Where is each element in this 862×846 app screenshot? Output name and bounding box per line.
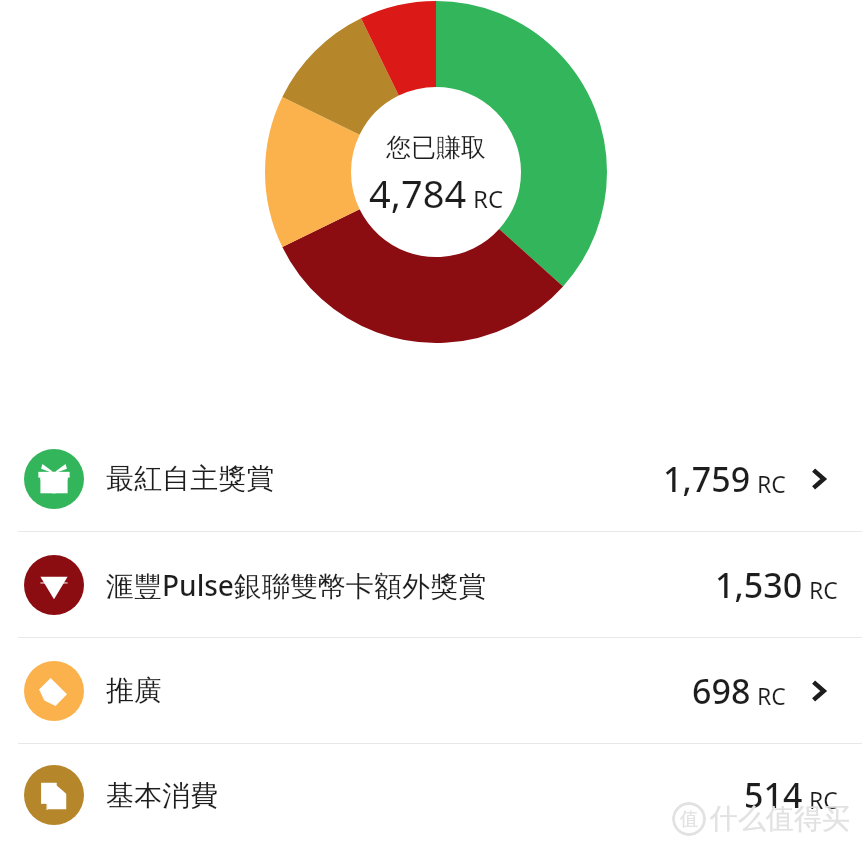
staticText: 基本消費 <box>106 778 218 813</box>
staticText: 什么值得买 <box>710 801 850 836</box>
staticText: RC <box>757 680 786 711</box>
button[interactable]: 滙豐Pulse銀聯雙幣卡額外獎賞 <box>0 532 862 637</box>
staticText: 4,784 <box>369 167 467 219</box>
button[interactable]: 基本消費 <box>0 744 862 846</box>
staticText: 推廣 <box>106 673 162 708</box>
staticText: 698 <box>692 668 751 714</box>
button[interactable]: 最紅自主獎賞 <box>0 426 862 531</box>
staticText: 1,759 <box>663 456 751 502</box>
staticText: RC <box>757 468 786 499</box>
other: View details <box>804 677 832 705</box>
button[interactable]: 推廣 <box>0 638 862 743</box>
staticText: RC <box>473 182 504 215</box>
staticText: 1,530 <box>715 562 803 608</box>
staticText: RC <box>809 574 838 605</box>
staticText: 滙豐Pulse銀聯雙幣卡額外獎賞 <box>106 566 486 604</box>
other: View details <box>804 465 832 493</box>
staticText: 您已賺取 <box>386 132 486 163</box>
staticText: 值 <box>680 808 698 831</box>
staticText: 最紅自主獎賞 <box>106 461 274 496</box>
staticText: 514 <box>744 772 803 818</box>
staticText: RC <box>809 784 838 815</box>
